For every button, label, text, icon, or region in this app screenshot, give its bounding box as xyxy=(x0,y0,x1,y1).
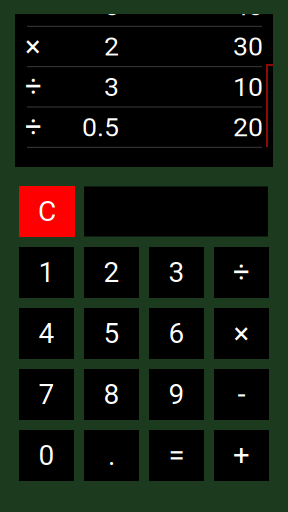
staticText: 3 xyxy=(104,71,119,102)
button[interactable]: 0 xyxy=(19,430,74,481)
staticText: 0.5 xyxy=(82,111,119,143)
button[interactable]: 7 xyxy=(19,369,74,420)
staticText: - xyxy=(237,377,245,412)
staticText: × xyxy=(25,29,41,64)
staticText: 6 xyxy=(168,317,184,350)
staticText: 30 xyxy=(233,31,263,62)
button[interactable]: 4 xyxy=(19,308,74,359)
staticText: 10 xyxy=(233,71,263,102)
staticText: 9 xyxy=(168,378,184,411)
staticText: 3 xyxy=(168,256,184,289)
staticText: ÷ xyxy=(233,255,250,290)
staticText: ÷ xyxy=(25,110,42,144)
button[interactable]: + xyxy=(214,430,269,481)
staticText: 2 xyxy=(103,256,119,289)
staticText: 5 xyxy=(104,0,119,22)
staticText: 8 xyxy=(103,378,119,411)
button[interactable]: × xyxy=(214,308,269,359)
button[interactable]: - xyxy=(214,369,269,420)
button[interactable]: 1 xyxy=(19,247,74,298)
staticText: 1 xyxy=(38,256,54,289)
button[interactable]: 9 xyxy=(149,369,204,420)
staticText: 2 xyxy=(104,31,119,62)
button[interactable]: 3 xyxy=(149,247,204,298)
staticText: + xyxy=(25,0,42,23)
button[interactable]: . xyxy=(84,430,139,481)
button[interactable]: 5 xyxy=(84,308,139,359)
button[interactable]: 2 xyxy=(84,247,139,298)
staticText: + xyxy=(233,438,250,473)
button[interactable]: 6 xyxy=(149,308,204,359)
staticText: × xyxy=(233,316,249,351)
staticText: 4 xyxy=(38,317,54,350)
staticText: . xyxy=(108,439,115,472)
staticText: 40 xyxy=(233,0,263,22)
button[interactable]: 8 xyxy=(84,369,139,420)
staticText: C xyxy=(38,195,56,228)
button[interactable]: = xyxy=(149,430,204,481)
staticText: = xyxy=(168,438,184,473)
staticText: ÷ xyxy=(25,70,42,104)
staticText: 7 xyxy=(38,378,54,411)
button[interactable]: C xyxy=(19,186,75,237)
staticText: 20 xyxy=(233,111,263,143)
button[interactable]: Display xyxy=(84,186,268,236)
staticText: 5 xyxy=(103,317,119,350)
staticText: 0 xyxy=(38,439,54,472)
button[interactable]: ÷ xyxy=(214,247,269,298)
